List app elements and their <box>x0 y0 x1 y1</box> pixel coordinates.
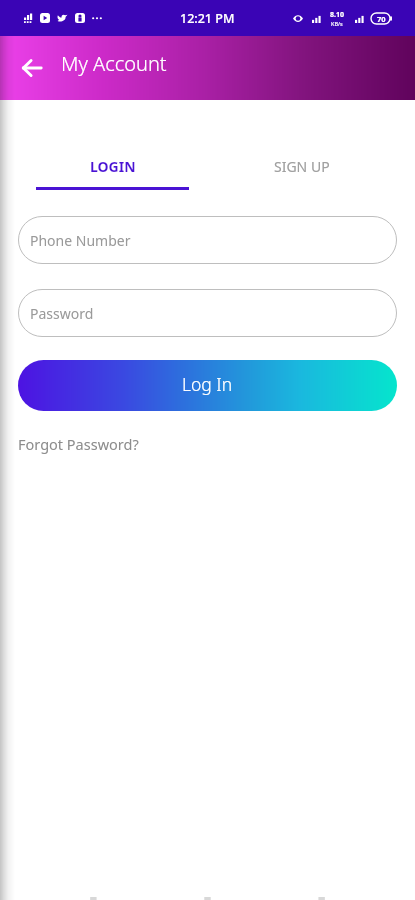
button[interactable]: LOGIN <box>18 142 207 190</box>
staticText: Password <box>30 304 94 323</box>
staticText: KB/s <box>331 20 343 27</box>
button[interactable]: Log In <box>18 360 397 411</box>
staticText: 12:21 PM <box>180 10 235 27</box>
staticText: Log In <box>182 372 233 396</box>
staticText: 70 <box>377 14 386 24</box>
button[interactable]: Back <box>11 48 51 88</box>
button[interactable]: Forgot Password? <box>18 434 139 454</box>
staticText: My Account <box>61 50 167 77</box>
staticText: Phone Number <box>30 231 131 250</box>
button[interactable]: SIGN UP <box>207 142 397 190</box>
staticText: LOGIN <box>90 157 136 176</box>
staticText: SIGN UP <box>274 157 330 176</box>
button[interactable]: Password <box>18 289 397 337</box>
button[interactable]: Phone Number <box>18 216 397 264</box>
staticText: 8.10 <box>330 10 344 20</box>
